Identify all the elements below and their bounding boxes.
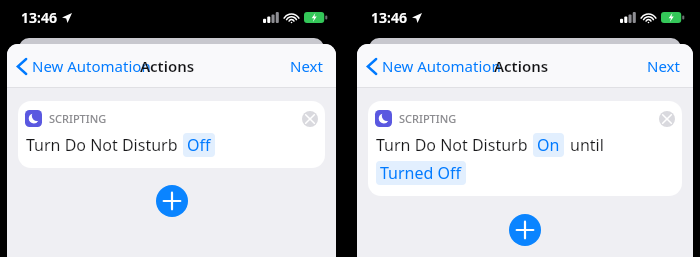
button[interactable]: SCRIPTING	[18, 101, 325, 168]
staticText: Turn Do Not Disturb	[376, 134, 528, 156]
button[interactable]: SCRIPTING	[368, 101, 682, 196]
button[interactable]: Remove action	[302, 111, 318, 127]
staticText: Off	[187, 134, 211, 156]
staticText: 13:46	[371, 8, 407, 27]
staticText: Turned Off	[380, 162, 462, 184]
staticText: Next	[290, 56, 323, 76]
staticText: New Automation	[382, 56, 501, 76]
staticText: New Automation	[32, 56, 151, 76]
button[interactable]: Add action	[156, 185, 188, 217]
button[interactable]: Off	[183, 133, 215, 157]
button[interactable]: New Automation	[13, 52, 157, 80]
staticText: Turn Do Not Disturb	[26, 134, 178, 156]
staticText: On	[537, 134, 560, 156]
staticText: Next	[647, 56, 680, 76]
staticText: SCRIPTING	[49, 111, 107, 126]
staticText: Actions	[140, 56, 195, 76]
button[interactable]: Turned Off	[376, 161, 466, 185]
button[interactable]: Next	[643, 52, 684, 80]
button[interactable]: Remove action	[659, 111, 675, 127]
staticText: SCRIPTING	[399, 111, 457, 126]
staticText: 13:46	[21, 8, 57, 27]
staticText: Actions	[494, 56, 549, 76]
button[interactable]: Next	[286, 52, 327, 80]
button[interactable]: On	[533, 133, 564, 157]
staticText: until	[570, 134, 604, 156]
button[interactable]: Add action	[509, 214, 541, 246]
button[interactable]: New Automation	[363, 52, 507, 80]
